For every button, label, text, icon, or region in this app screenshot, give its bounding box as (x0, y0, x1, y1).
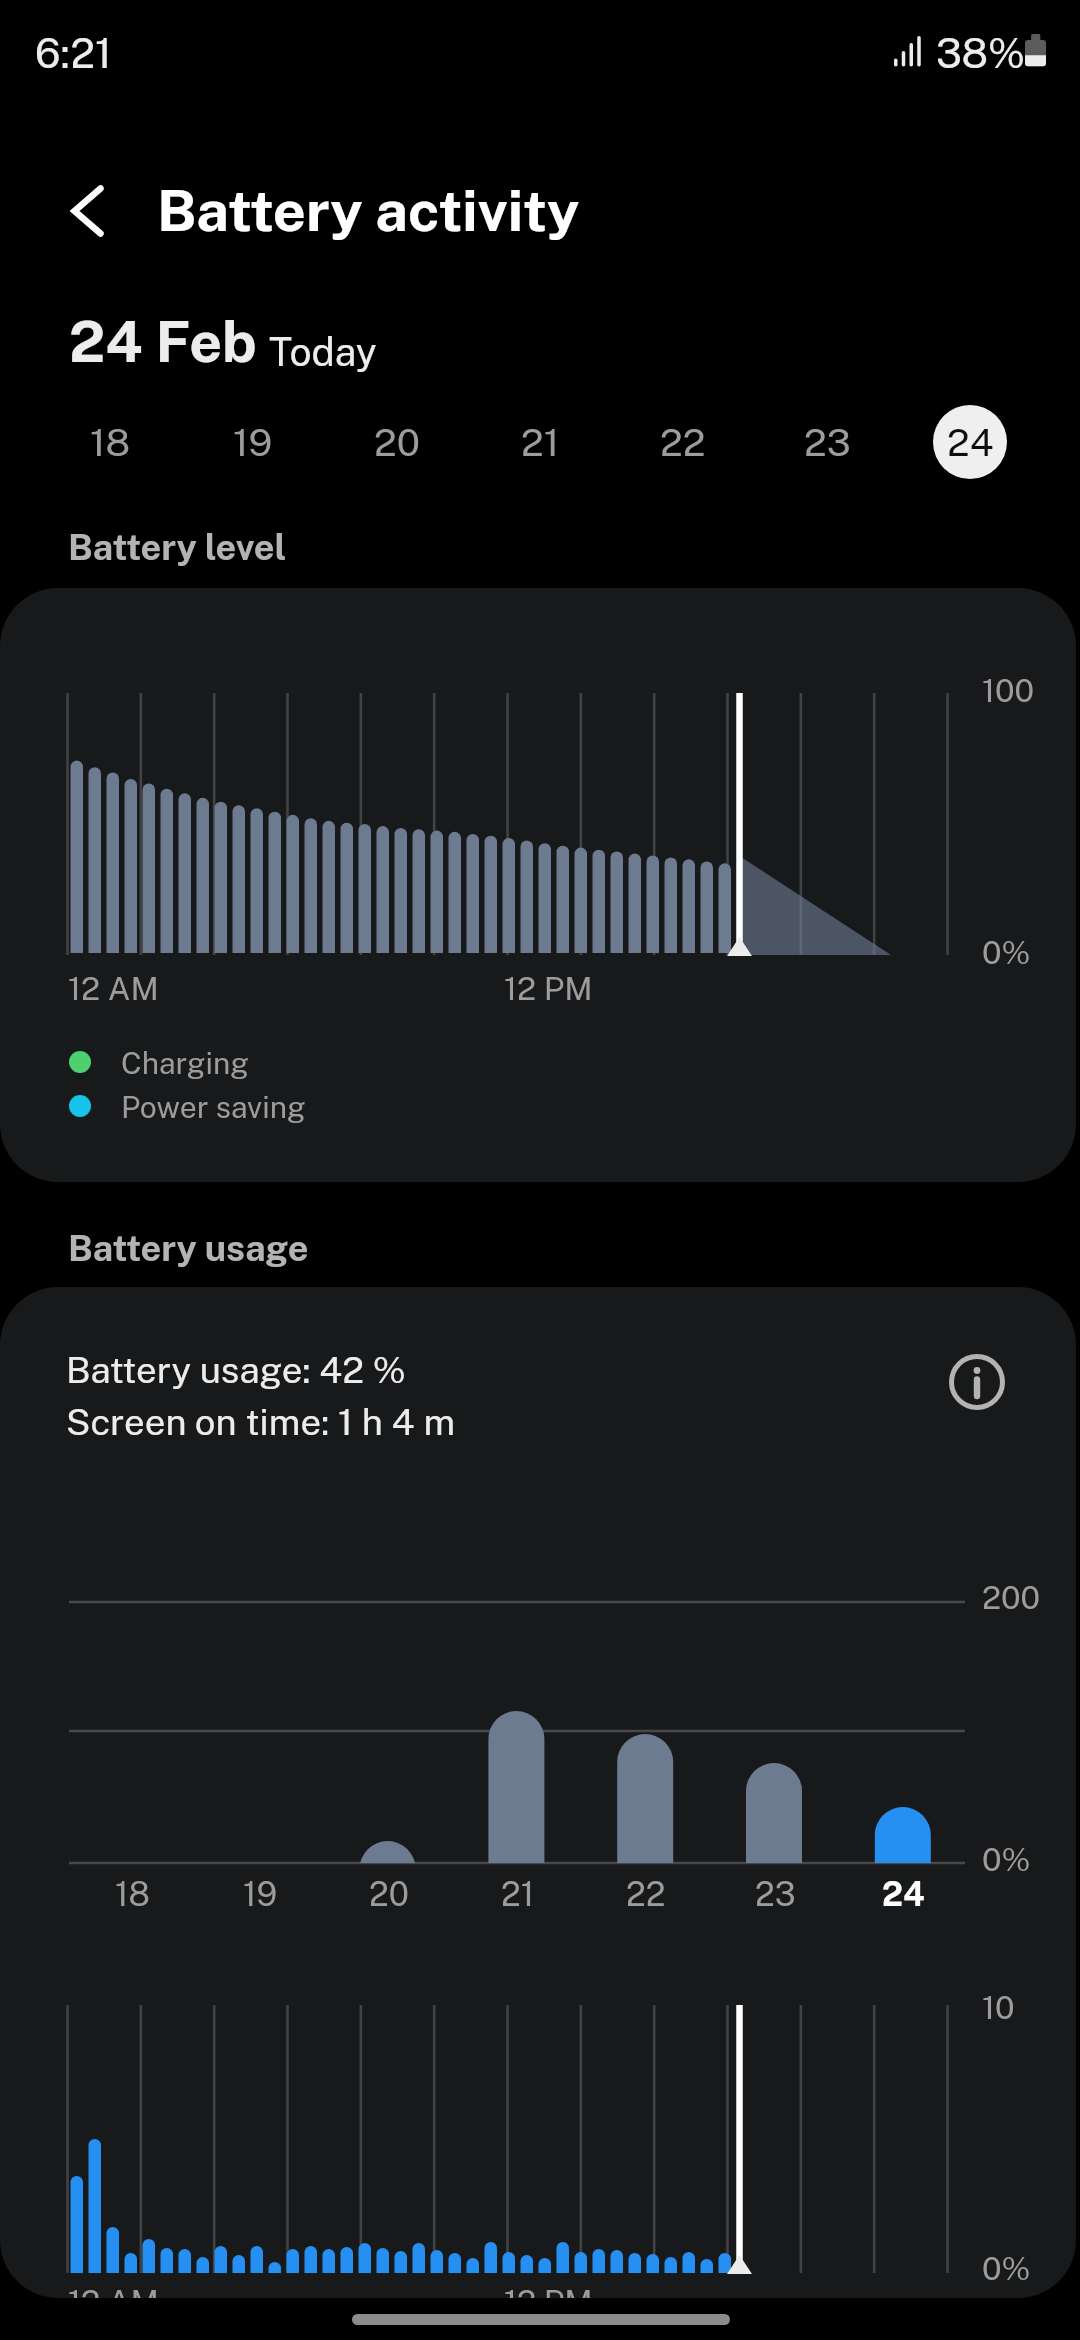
staticText: 12 AM (68, 970, 159, 1008)
staticText: Battery activity (157, 176, 580, 244)
button[interactable]: Back (36, 160, 580, 270)
staticText: 10 (982, 1989, 1015, 2027)
staticText: 12 PM (504, 2283, 593, 2298)
staticText: Battery level (68, 526, 287, 568)
staticText: 21 (501, 1875, 535, 1914)
staticText: 12 PM (504, 970, 593, 1008)
button[interactable]: 21 (478, 1868, 558, 1920)
staticText: 22 (626, 1875, 666, 1914)
button[interactable]: 20 (349, 1868, 429, 1920)
staticText: Power saving (121, 1089, 306, 1124)
staticText: 24 (882, 1875, 925, 1914)
staticText: 24 (947, 420, 994, 465)
staticText: 20 (374, 420, 420, 465)
staticText: 23 (804, 420, 851, 465)
staticText: Charging (121, 1045, 250, 1080)
button[interactable]: 21 (503, 405, 577, 479)
staticText: 0% (982, 934, 1031, 972)
button[interactable]: Information (941, 1346, 1013, 1418)
button[interactable]: 19 (216, 405, 290, 479)
button[interactable]: 18 (73, 405, 147, 479)
staticText: 19 (233, 420, 273, 465)
staticText: Today (269, 329, 377, 375)
staticText: 6:21 (35, 29, 112, 77)
staticText: 22 (660, 420, 706, 465)
staticText: 100 (982, 672, 1034, 710)
button[interactable]: 19 (220, 1868, 300, 1920)
staticText: 21 (521, 420, 560, 465)
staticText: 18 (90, 420, 131, 465)
button[interactable]: 20 (360, 405, 434, 479)
staticText: 19 (243, 1875, 278, 1914)
staticText: 24 Feb (69, 308, 257, 375)
staticText: 0% (982, 1841, 1031, 1879)
staticText: 18 (115, 1875, 150, 1914)
button[interactable]: 23 (790, 405, 864, 479)
button[interactable]: 24 (933, 405, 1007, 479)
staticText: 23 (755, 1875, 796, 1914)
staticText: Battery usage (68, 1227, 309, 1269)
button[interactable]: 23 (735, 1868, 815, 1920)
button[interactable]: 22 (646, 405, 720, 479)
button[interactable]: 18 (92, 1868, 172, 1920)
button[interactable]: 22 (606, 1868, 686, 1920)
staticText: Battery usage: 42 % (66, 1348, 406, 1391)
staticText: 200 (982, 1579, 1041, 1617)
staticText: Screen on time: 1 h 4 m (66, 1400, 455, 1443)
button[interactable]: Back (36, 160, 126, 270)
staticText: 12 AM (68, 2283, 159, 2298)
staticText: 0% (982, 2250, 1031, 2288)
staticText: 38% (936, 29, 1026, 77)
button[interactable]: 24 (863, 1868, 943, 1920)
staticText: 20 (369, 1875, 409, 1914)
